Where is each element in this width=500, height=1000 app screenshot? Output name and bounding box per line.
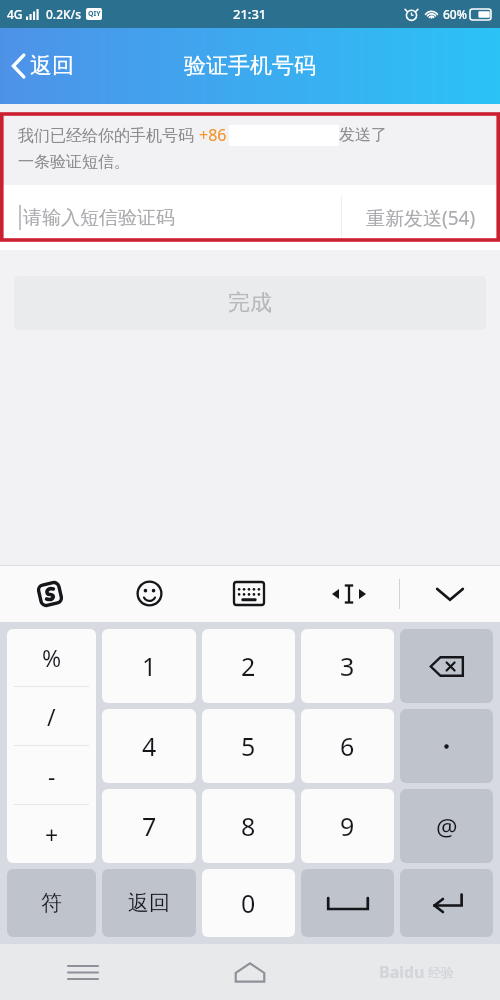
button[interactable]: 返回 <box>102 869 196 937</box>
staticText: @ <box>436 810 458 843</box>
staticText: Baidu <box>379 961 425 983</box>
button[interactable]: 6 <box>301 709 394 783</box>
staticText: 21:31 <box>233 5 267 23</box>
staticText: 返回 <box>128 890 170 916</box>
staticText: / <box>47 701 56 732</box>
staticText: 0.2K/s <box>46 6 82 22</box>
button[interactable]: Delete <box>400 629 493 703</box>
staticText: 发送了 <box>339 125 387 145</box>
staticText: 我们已经给你的手机号码 <box>18 124 199 146</box>
staticText: 符 <box>41 890 62 916</box>
staticText: 9 <box>340 809 355 843</box>
button[interactable]: 3 <box>301 629 394 703</box>
staticText: 5 <box>241 729 256 763</box>
button[interactable]: Home <box>166 944 333 1000</box>
button[interactable]: Move cursor <box>299 565 399 622</box>
button[interactable]: 重新发送(54) <box>342 185 500 250</box>
staticText: + <box>45 819 59 850</box>
button[interactable]: 返回 <box>0 42 88 90</box>
staticText: 请输入短信验证码 <box>23 206 175 230</box>
button[interactable]: - <box>7 746 96 804</box>
staticText: +86 <box>199 124 227 146</box>
staticText: 1 <box>142 649 157 683</box>
button[interactable]: 请输入短信验证码 <box>0 185 341 250</box>
staticText: QIY <box>88 9 101 19</box>
button[interactable]: Period <box>400 709 493 783</box>
staticText: - <box>48 760 56 791</box>
staticText: 8 <box>241 809 256 843</box>
button[interactable]: 4 <box>102 709 196 783</box>
staticText: % <box>42 642 62 673</box>
button[interactable]: + <box>7 805 96 863</box>
staticText: 3 <box>340 649 355 683</box>
staticText: 经验 <box>428 964 454 980</box>
button[interactable]: 7 <box>102 789 196 863</box>
staticText: 4 <box>142 729 157 763</box>
button[interactable]: 1 <box>102 629 196 703</box>
button[interactable]: 2 <box>202 629 295 703</box>
button[interactable]: Space <box>301 869 394 937</box>
button[interactable]: Enter <box>400 869 493 937</box>
button[interactable]: Emoji <box>99 565 199 622</box>
button[interactable]: Recent apps <box>0 944 166 1000</box>
button[interactable]: % <box>7 629 96 686</box>
button[interactable]: / <box>7 687 96 745</box>
button[interactable]: 符 <box>7 869 96 937</box>
staticText: 重新发送(54) <box>366 205 476 231</box>
button[interactable]: 完成 <box>14 276 486 330</box>
button[interactable]: At sign <box>400 789 493 863</box>
button[interactable]: 9 <box>301 789 394 863</box>
staticText: 7 <box>142 809 157 843</box>
staticText: 4G <box>7 6 23 22</box>
button[interactable]: 5 <box>202 709 295 783</box>
staticText: 2 <box>241 649 256 683</box>
staticText: 0 <box>241 886 256 920</box>
button[interactable]: Keyboard layout <box>199 565 299 622</box>
staticText: 6 <box>340 729 355 763</box>
button[interactable]: Sogou input method <box>0 565 99 622</box>
staticText: 返回 <box>30 52 74 80</box>
staticText: 60% <box>443 6 467 22</box>
button[interactable]: Hide keyboard <box>400 565 500 622</box>
button[interactable]: 8 <box>202 789 295 863</box>
staticText: 完成 <box>228 289 272 317</box>
staticText: 一条验证短信。 <box>18 152 130 172</box>
button[interactable]: 0 <box>202 869 295 937</box>
staticText: 验证手机号码 <box>184 52 316 80</box>
